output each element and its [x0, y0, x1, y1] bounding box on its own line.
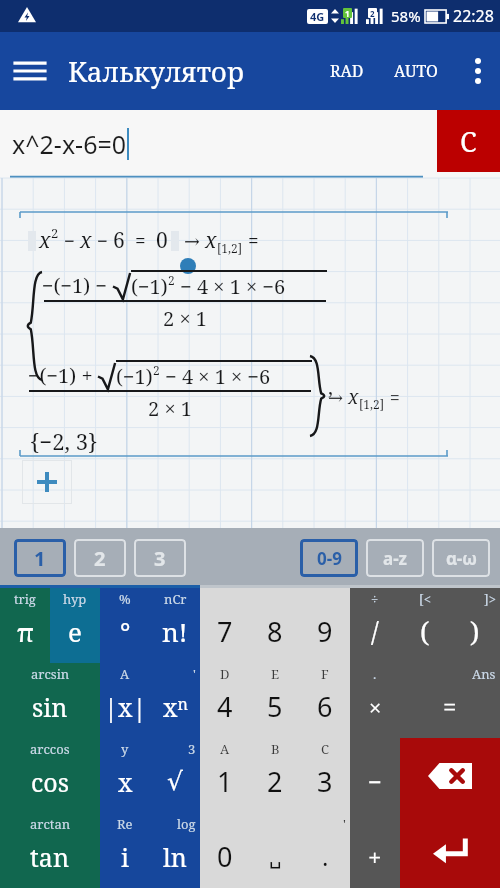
button[interactable]: 1: [14, 539, 66, 577]
staticText: − 4 × 1 × −6: [160, 363, 271, 390]
button[interactable]: 8: [250, 588, 300, 663]
button[interactable]: arccos: [0, 738, 100, 813]
button[interactable]: ': [300, 813, 350, 888]
button[interactable]: Backspace: [400, 738, 500, 813]
staticText: 1: [345, 8, 350, 18]
button[interactable]: F: [300, 663, 350, 738]
staticText: 58%: [391, 6, 421, 26]
button[interactable]: −: [350, 738, 400, 813]
button[interactable]: Add: [22, 460, 72, 504]
button[interactable]: arcsin: [0, 663, 100, 738]
button[interactable]: 3: [150, 738, 200, 813]
button[interactable]: 2: [74, 539, 126, 577]
staticText: Re: [117, 815, 133, 833]
staticText: 3: [317, 763, 333, 800]
staticText: 2: [51, 224, 59, 242]
staticText: 7: [217, 613, 233, 650]
button[interactable]: y: [100, 738, 150, 813]
staticText: x: [80, 226, 92, 255]
button[interactable]: 0-9: [300, 539, 358, 577]
button[interactable]: Enter: [400, 813, 500, 888]
staticText: arctan: [30, 815, 71, 833]
button[interactable]: log: [150, 813, 200, 888]
button[interactable]: %: [100, 588, 150, 663]
staticText: ÷: [371, 590, 379, 608]
staticText: e: [68, 614, 82, 649]
staticText: ]>: [484, 590, 496, 608]
staticText: C: [321, 740, 329, 758]
staticText: =: [243, 228, 259, 254]
button[interactable]: RAD: [322, 50, 372, 92]
button[interactable]: ␣: [250, 813, 300, 888]
button[interactable]: arctan: [0, 813, 100, 888]
staticText: [<: [419, 590, 431, 608]
staticText: −: [59, 228, 80, 254]
staticText: − 4 × 1 × −6: [175, 273, 286, 300]
staticText: =: [125, 228, 156, 254]
staticText: .: [373, 665, 377, 683]
staticText: x: [205, 226, 217, 255]
staticText: x: [118, 765, 133, 799]
staticText: 3: [188, 740, 196, 758]
staticText: 2: [267, 763, 283, 800]
staticText: A: [120, 665, 130, 683]
staticText: D: [220, 665, 230, 683]
button[interactable]: Ans: [400, 663, 500, 738]
button[interactable]: trig: [0, 588, 50, 663]
button[interactable]: nCr: [150, 588, 200, 663]
staticText: 3: [154, 545, 166, 572]
staticText: 9: [317, 613, 333, 650]
staticText: B: [271, 740, 280, 758]
button[interactable]: B: [250, 738, 300, 813]
button[interactable]: ]>: [450, 588, 500, 663]
button[interactable]: ÷: [350, 588, 400, 663]
staticText: 2: [94, 545, 106, 572]
button[interactable]: More options: [456, 41, 500, 101]
staticText: i: [121, 840, 130, 874]
button[interactable]: ɑ-ω: [432, 539, 490, 577]
staticText: =: [443, 690, 457, 723]
staticText: →: [179, 228, 205, 254]
staticText: 5: [267, 688, 283, 725]
button[interactable]: hyp: [50, 588, 100, 663]
button[interactable]: C: [300, 738, 350, 813]
button[interactable]: 9: [300, 588, 350, 663]
staticText: −(−1) +: [28, 362, 98, 389]
button[interactable]: C: [437, 110, 500, 172]
staticText: 2 × 1: [163, 305, 207, 332]
button[interactable]: ': [150, 663, 200, 738]
button[interactable]: A: [100, 663, 150, 738]
button[interactable]: AUTO: [386, 50, 446, 92]
staticText: =: [385, 385, 400, 410]
staticText: π: [17, 614, 34, 649]
staticText: xⁿ: [163, 690, 188, 724]
button[interactable]: a-z: [366, 539, 424, 577]
staticText: ': [193, 665, 196, 683]
staticText: ␣: [269, 845, 282, 868]
staticText: cos: [31, 765, 70, 799]
staticText: n!: [162, 614, 188, 649]
button[interactable]: A: [200, 738, 250, 813]
staticText: [1,2]: [359, 396, 385, 412]
staticText: 6: [317, 688, 333, 725]
staticText: sin: [32, 690, 68, 724]
button[interactable]: [<: [400, 588, 450, 663]
button[interactable]: E: [250, 663, 300, 738]
button[interactable]: Re: [100, 813, 150, 888]
button[interactable]: +: [350, 813, 400, 888]
button[interactable]: Menu: [0, 41, 60, 101]
staticText: 1: [217, 763, 233, 800]
staticText: AUTO: [394, 60, 438, 82]
button[interactable]: 3: [134, 539, 186, 577]
button[interactable]: 7: [200, 588, 250, 663]
staticText: A: [220, 740, 230, 758]
staticText: 2 × 1: [148, 395, 192, 422]
staticText: trig: [14, 590, 36, 608]
button[interactable]: .: [350, 663, 400, 738]
button[interactable]: D: [200, 663, 250, 738]
staticText: (: [420, 613, 430, 650]
staticText: [1,2]: [217, 240, 243, 256]
staticText: −: [368, 765, 382, 798]
button[interactable]: 0: [200, 813, 250, 888]
staticText: →: [328, 385, 348, 410]
